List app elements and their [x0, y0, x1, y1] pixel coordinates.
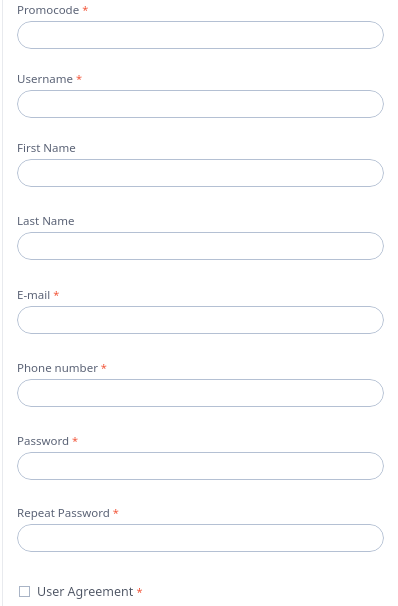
staticText: Phone number * [17, 360, 107, 376]
staticText: Username * [17, 71, 82, 87]
staticText: Password * [17, 433, 79, 449]
staticText: Last Name [17, 213, 75, 229]
button[interactable] [17, 306, 384, 334]
staticText: Promocode * [17, 2, 89, 18]
button[interactable]: User Agreement * [19, 582, 143, 601]
staticText: Repeat Password * [17, 505, 119, 521]
button[interactable] [17, 21, 384, 49]
button[interactable] [17, 232, 384, 260]
staticText: User Agreement * [37, 583, 143, 600]
button[interactable] [17, 159, 384, 187]
button[interactable] [17, 90, 384, 118]
button[interactable] [17, 452, 384, 480]
staticText: First Name [17, 140, 76, 156]
button[interactable] [17, 524, 384, 552]
staticText: E-mail * [17, 287, 60, 303]
button[interactable] [17, 379, 384, 407]
